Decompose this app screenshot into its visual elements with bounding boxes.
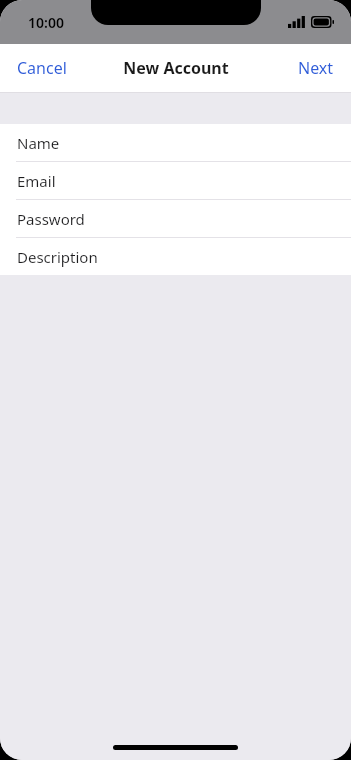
staticText: Next: [298, 57, 334, 79]
button[interactable]: Cancel: [0, 47, 84, 89]
staticText: Cancel: [17, 57, 67, 79]
staticText: Password: [17, 209, 85, 229]
button[interactable]: Next: [281, 47, 351, 89]
staticText: New Account: [123, 57, 229, 79]
staticText: 10:00: [28, 13, 64, 32]
staticText: Description: [17, 247, 98, 267]
staticText: Email: [17, 171, 56, 191]
button[interactable]: Description: [0, 238, 351, 275]
staticText: Name: [17, 133, 60, 153]
button[interactable]: Email: [0, 162, 351, 199]
button[interactable]: Password: [0, 200, 351, 237]
button[interactable]: Name: [0, 124, 351, 161]
